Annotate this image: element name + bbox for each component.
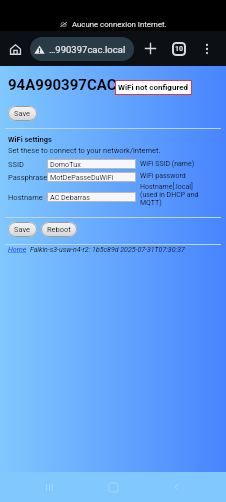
button[interactable]: MotDePasseDuWiFi [47, 172, 136, 182]
staticText: DomoTux [50, 160, 81, 168]
button[interactable]: Home [8, 246, 27, 254]
button[interactable]: New tab [137, 35, 164, 62]
staticText: Passphrase [8, 173, 47, 182]
staticText: Hostname[.local] (used in DHCP and MQTT) [140, 183, 222, 207]
button[interactable]: AC Debarras [47, 192, 136, 202]
button[interactable]: More options [194, 36, 220, 62]
button[interactable]: Reboot [41, 222, 77, 237]
staticText: 10 [175, 45, 184, 53]
staticText: AC Debarras [50, 193, 90, 201]
button[interactable]: …990397cac.local [30, 37, 134, 61]
staticText: …990397cac.local [49, 44, 126, 55]
staticText: Reboot [47, 225, 71, 234]
staticText: Save [14, 109, 31, 118]
button[interactable]: Save [8, 222, 37, 237]
staticText: MotDePasseDuWiFi [50, 173, 114, 181]
staticText: Save [14, 225, 31, 234]
button[interactable]: Tabs [165, 35, 192, 62]
staticText: WiFi password [140, 172, 222, 180]
button[interactable]: Save [8, 106, 37, 121]
staticText: Falkin-s3-usw-n4-r2: 1b5c89d 2025-07-31T… [30, 246, 185, 254]
button[interactable]: Home [98, 472, 128, 502]
staticText: 94A990397CAC [8, 76, 117, 94]
staticText: SSID [8, 160, 24, 169]
staticText: WiFi not configured [118, 83, 189, 92]
button[interactable]: DomoTux [47, 159, 136, 169]
staticText: Hostname [8, 193, 43, 202]
staticText: Aucune connexion Internet. [72, 20, 167, 29]
button[interactable]: Recent apps [34, 472, 64, 502]
staticText: WiFi SSID (name) [140, 160, 222, 168]
button[interactable]: Home [3, 37, 27, 61]
staticText: WiFi settings [8, 135, 52, 144]
staticText: Set these to connect to your network/int… [8, 146, 161, 155]
